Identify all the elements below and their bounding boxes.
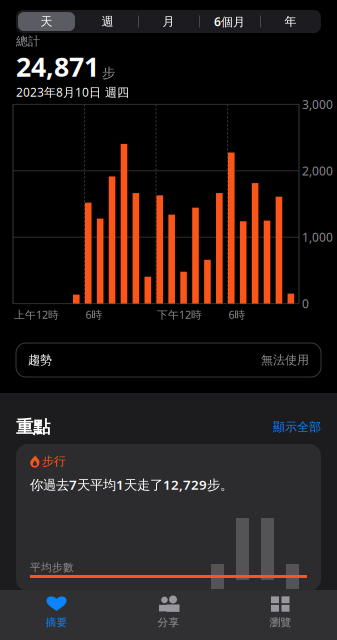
staticText: 步行 <box>42 454 66 469</box>
staticText: 趨勢 <box>28 353 52 367</box>
staticText: 0 <box>302 296 309 311</box>
button[interactable]: 分享 <box>112 590 224 640</box>
staticText: 2,000 <box>302 163 333 179</box>
staticText: 顯示全部 <box>273 420 321 434</box>
staticText: 你過去7天平均1天走了12,729步。 <box>30 476 233 493</box>
staticText: 年 <box>284 14 296 29</box>
button[interactable]: 週 <box>77 10 138 33</box>
staticText: 3,000 <box>302 96 333 112</box>
staticText: 無法使用 <box>261 353 309 367</box>
staticText: 6時 <box>85 307 102 322</box>
staticText: 上午12時 <box>14 307 59 322</box>
staticText: 1,000 <box>302 229 333 245</box>
button[interactable]: 摘要 <box>0 590 112 640</box>
staticText: 天 <box>40 14 52 29</box>
staticText: 24,871 <box>16 49 99 84</box>
button[interactable]: 瀏覽 <box>224 590 336 640</box>
staticText: 下午12時 <box>157 307 202 322</box>
button[interactable]: 趨勢 <box>16 343 321 377</box>
staticText: 月 <box>162 14 174 29</box>
button[interactable]: 月 <box>138 10 199 33</box>
button[interactable]: 天 <box>16 10 77 33</box>
staticText: 6時 <box>229 307 246 322</box>
staticText: 步 <box>102 65 115 81</box>
button[interactable]: 年 <box>260 10 321 33</box>
staticText: 摘要 <box>45 616 67 629</box>
staticText: 6個月 <box>214 13 245 29</box>
staticText: 總計 <box>16 34 40 49</box>
button[interactable]: 顯示全部 <box>273 420 321 434</box>
staticText: 週 <box>101 14 113 29</box>
staticText: 瀏覽 <box>269 616 291 629</box>
staticText: 平均步數 <box>30 561 74 574</box>
staticText: 2023年8月10日 週四 <box>16 84 129 100</box>
button[interactable]: 步行 <box>16 444 321 591</box>
button[interactable]: 6個月 <box>199 10 260 33</box>
staticText: 分享 <box>157 616 179 629</box>
staticText: 重點 <box>16 416 50 438</box>
